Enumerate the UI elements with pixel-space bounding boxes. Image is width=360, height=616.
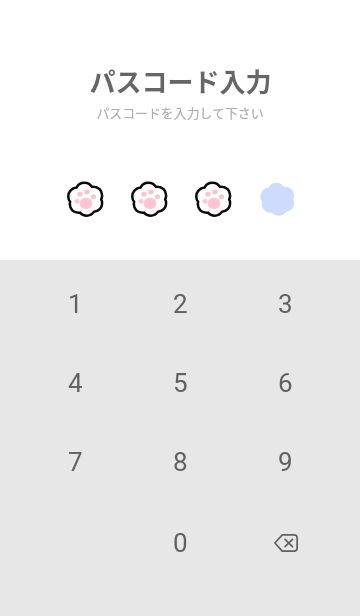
button[interactable]: 7 xyxy=(22,438,128,486)
staticText: 2 xyxy=(173,289,188,319)
staticText: 8 xyxy=(173,447,188,477)
staticText: 3 xyxy=(278,289,293,319)
staticText: パスコード入力 xyxy=(89,62,272,100)
button[interactable]: 5 xyxy=(128,359,233,407)
button[interactable]: 0 xyxy=(128,519,233,567)
button[interactable]: 6 xyxy=(233,359,338,407)
staticText: 7 xyxy=(68,447,83,477)
staticText: 5 xyxy=(173,368,188,398)
button[interactable]: 8 xyxy=(128,438,233,486)
staticText: 6 xyxy=(278,368,293,398)
button[interactable]: 2 xyxy=(128,280,233,328)
button[interactable]: 4 xyxy=(22,359,128,407)
staticText: 1 xyxy=(68,289,83,319)
staticText: 0 xyxy=(173,528,188,558)
staticText: パスコードを入力して下さい xyxy=(96,103,264,122)
staticText: 4 xyxy=(68,368,83,398)
button[interactable]: 9 xyxy=(233,438,338,486)
button[interactable]: 1 xyxy=(22,280,128,328)
staticText: 9 xyxy=(278,447,293,477)
button[interactable]: Delete xyxy=(233,519,338,567)
button[interactable]: 3 xyxy=(233,280,338,328)
